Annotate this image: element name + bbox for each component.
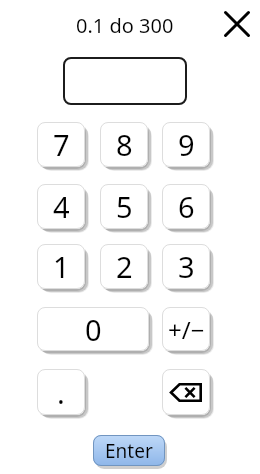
button[interactable]: 2 xyxy=(100,244,148,289)
staticText: 9 xyxy=(178,125,195,164)
staticText: +/− xyxy=(168,313,205,346)
staticText: Enter xyxy=(105,438,153,464)
staticText: 3 xyxy=(178,247,195,286)
button[interactable]: 8 xyxy=(100,122,148,167)
button[interactable]: 7 xyxy=(37,122,85,167)
button[interactable]: 5 xyxy=(100,184,148,229)
staticText: 8 xyxy=(116,125,133,164)
staticText: 7 xyxy=(53,125,70,164)
button[interactable]: 3 xyxy=(162,244,210,289)
button[interactable] xyxy=(63,57,187,105)
button[interactable]: Enter xyxy=(93,435,165,466)
staticText: 5 xyxy=(116,187,133,226)
staticText: 1 xyxy=(53,247,70,286)
staticText: 0 xyxy=(85,310,102,349)
button[interactable]: . xyxy=(37,369,85,415)
staticText: 6 xyxy=(178,187,195,226)
staticText: 4 xyxy=(53,187,70,226)
button[interactable]: 1 xyxy=(37,244,85,289)
staticText: 0.1 do 300 xyxy=(76,12,174,39)
button[interactable]: 0 xyxy=(37,307,149,351)
button[interactable]: 6 xyxy=(162,184,210,229)
staticText: 2 xyxy=(116,247,133,286)
staticText: . xyxy=(57,373,65,412)
button[interactable] xyxy=(217,4,257,44)
button[interactable] xyxy=(162,369,210,415)
button[interactable]: 4 xyxy=(37,184,85,229)
button[interactable]: 9 xyxy=(162,122,210,167)
button[interactable]: +/− xyxy=(162,307,210,351)
